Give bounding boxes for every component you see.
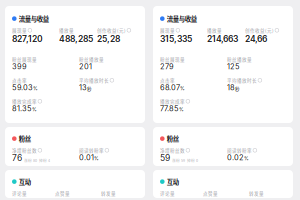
staticText: 转发量 [101,190,116,197]
staticText: 77.85% [160,104,184,113]
staticText: 掉粉 4 [39,158,50,163]
staticText: 点赞量 [55,190,70,197]
staticText: 点赞量 [203,190,218,197]
staticText: 创作收益(元) [245,27,274,34]
staticText: 掉粉 0 [187,158,198,163]
staticText: 76 [12,153,22,163]
staticText: 阅读转粉率 [79,147,104,154]
staticText: 399 [12,62,27,71]
staticText: 点击率 [12,77,27,84]
staticText: 评论量 [160,190,175,197]
staticText: 粉丝 [19,134,31,143]
staticText: 互动 [19,177,31,186]
staticText: 粉丝 [167,134,179,143]
staticText: 阅读转粉率 [227,147,252,154]
staticText: 488,285 [59,34,93,44]
staticText: 0.01% [79,153,99,162]
staticText: 68.07% [160,83,185,92]
staticText: 0.02% [227,153,249,162]
staticText: 201 [79,62,92,71]
staticText: 播放完成率 [12,98,37,105]
staticText: 13秒 [79,83,92,92]
staticText: 点击率 [160,77,175,84]
staticText: 展现量 [160,27,175,34]
staticText: 净增粉丝数 [160,147,185,154]
staticText: 互动 [167,177,179,186]
staticText: 125 [227,62,240,71]
staticText: 转发量 [249,190,264,197]
staticText: 粉丝播放量 [79,56,104,63]
staticText: 279 [160,62,174,71]
staticText: 24,66 [245,34,267,44]
staticText: 18秒 [227,83,240,92]
staticText: 827,120 [12,34,43,44]
staticText: 粉丝播放量 [227,56,252,63]
staticText: 涨粉 80 [24,158,37,163]
staticText: 25,28 [97,34,120,44]
staticText: 净增粉丝数 [12,147,37,154]
staticText: 粉丝展现量 [160,56,185,63]
staticText: 214,663 [207,34,238,44]
staticText: 评论量 [12,190,27,197]
staticText: 播放量 [207,27,222,34]
staticText: 81.35% [12,104,37,113]
staticText: 播放完成率 [160,98,185,105]
staticText: 播放量 [59,27,74,34]
staticText: 流量与收益 [167,14,197,23]
staticText: 59.03% [12,83,38,92]
staticText: 涨粉 59 [172,158,185,163]
staticText: 315,335 [160,34,192,44]
staticText: 平均播放时长 [79,77,109,84]
staticText: 平均播放时长 [227,77,257,84]
staticText: 创作收益(元) [97,27,126,34]
staticText: 流量与收益 [19,14,49,23]
staticText: 展现量 [12,27,27,34]
staticText: 粉丝展现量 [12,56,37,63]
staticText: 59 [160,153,170,163]
